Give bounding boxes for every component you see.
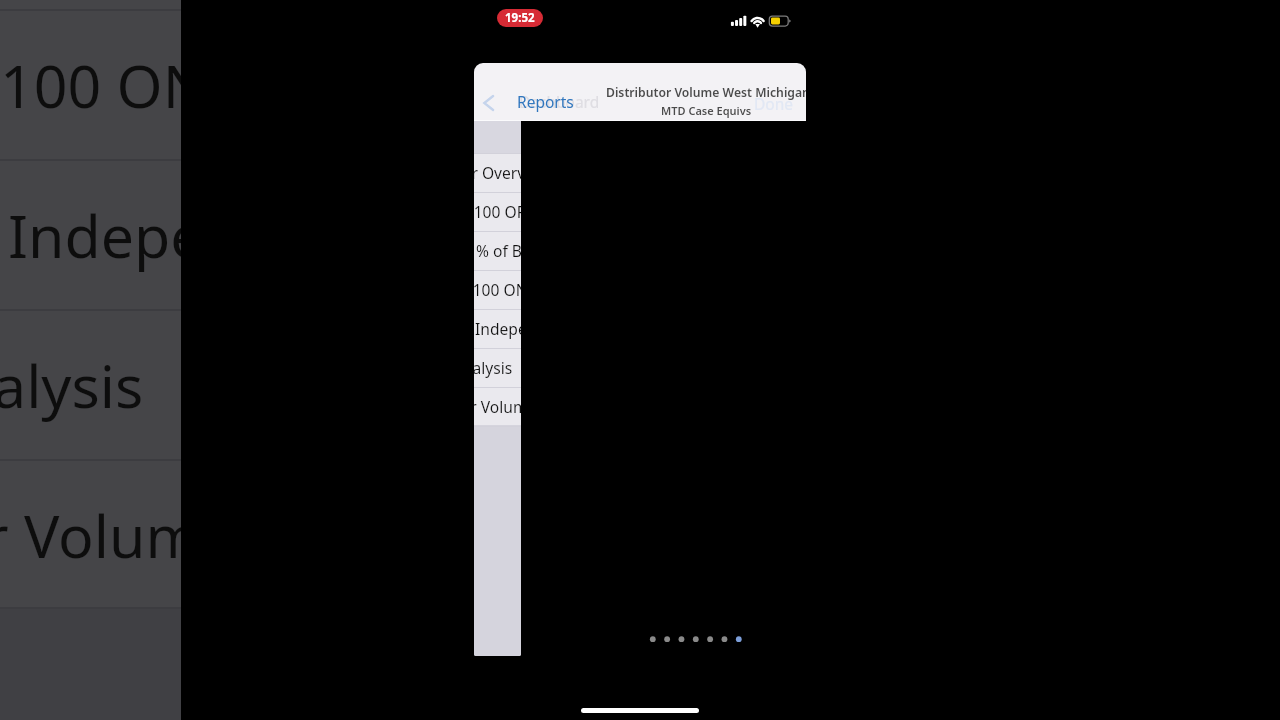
button[interactable]: Chain Analysis bbox=[0, 310, 181, 460]
button[interactable]: Top 100 ON Premise bbox=[474, 270, 521, 309]
staticText: Customer Overview bbox=[474, 162, 521, 183]
button[interactable]: Top 100 ON Premise bbox=[0, 10, 181, 160]
staticText: Chain Analysis bbox=[474, 357, 513, 378]
button[interactable]: Done bbox=[754, 93, 794, 114]
button[interactable]: Distributor Volume bbox=[0, 460, 181, 610]
button[interactable]: Distributor Volume bbox=[474, 387, 521, 426]
staticText: Top 100 ON Premise bbox=[474, 279, 521, 300]
button[interactable]: Independent Analysis bbox=[0, 160, 181, 310]
staticText: Distributor Volume bbox=[0, 495, 181, 575]
staticText: MTD Case Equivs bbox=[661, 103, 752, 118]
button[interactable]: Independent Analysis bbox=[474, 309, 521, 348]
staticText: Independent Analysis bbox=[475, 318, 521, 339]
button[interactable]: Reports bbox=[517, 91, 574, 112]
other: Back bbox=[483, 95, 494, 111]
staticText: Independent Analysis bbox=[8, 195, 181, 275]
staticText: % of Business bbox=[476, 240, 521, 261]
staticText: Top 100 OFF Premise bbox=[474, 201, 521, 222]
staticText: 19:52 bbox=[505, 10, 535, 26]
staticText: Reports bbox=[517, 91, 574, 112]
staticText: Distributor Volume West Michigan bbox=[606, 84, 806, 101]
button[interactable]: Page indicator bbox=[640, 630, 750, 650]
staticText: Dashboard bbox=[519, 91, 600, 112]
staticText: Chain Analysis bbox=[0, 345, 144, 425]
button[interactable]: Customer Overview bbox=[474, 153, 521, 192]
staticText: Distributor Volume bbox=[474, 396, 521, 417]
button[interactable]: Top 100 OFF Premise bbox=[474, 192, 521, 231]
staticText: Done bbox=[754, 93, 794, 114]
other: Status icons bbox=[728, 10, 796, 32]
button[interactable]: Chain Analysis bbox=[474, 348, 521, 387]
button[interactable]: % of Business bbox=[474, 231, 521, 270]
staticText: Top 100 ON Premise bbox=[0, 45, 181, 125]
